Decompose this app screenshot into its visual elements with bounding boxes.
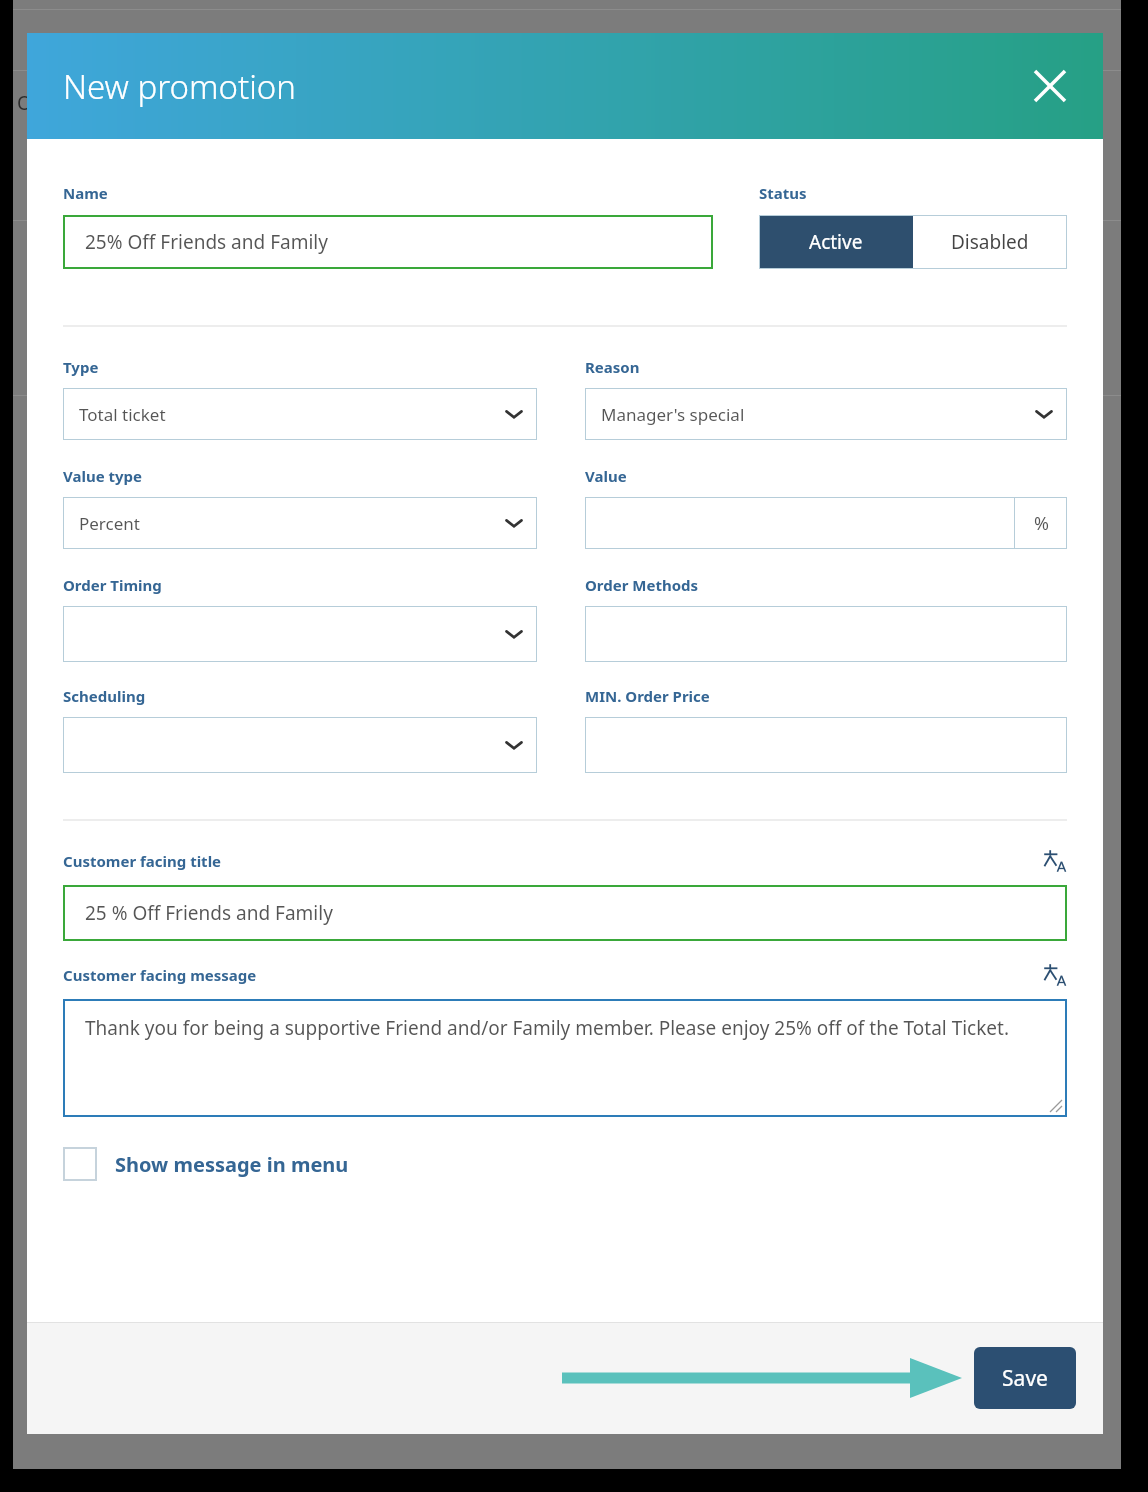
other: Translate: [1043, 849, 1067, 873]
staticText: Total ticket: [79, 403, 166, 426]
staticText: O: [17, 90, 32, 116]
button[interactable]: Active: [759, 215, 913, 269]
staticText: Disabled: [951, 229, 1029, 255]
staticText: Value type: [63, 466, 143, 486]
staticText: Status: [759, 183, 807, 203]
other: Translate: [1043, 963, 1067, 987]
button[interactable]: Save: [974, 1347, 1076, 1409]
button[interactable]: 25 % Off Friends and Family: [63, 885, 1067, 941]
staticText: Thank you for being a supportive Friend …: [85, 1015, 1010, 1041]
button[interactable]: [585, 497, 1014, 549]
button[interactable]: [63, 717, 537, 773]
button[interactable]: Percent: [63, 497, 537, 549]
staticText: Save: [1002, 1364, 1048, 1393]
staticText: Reason: [585, 357, 640, 377]
staticText: Order Methods: [585, 575, 699, 595]
button[interactable]: Disabled: [913, 215, 1067, 269]
staticText: 25% Off Friends and Family: [85, 229, 328, 255]
button[interactable]: Manager's special: [585, 388, 1067, 440]
button[interactable]: Show message in menu: [63, 1147, 349, 1181]
button[interactable]: [585, 606, 1067, 662]
button[interactable]: [63, 606, 537, 662]
staticText: %: [1034, 511, 1049, 536]
staticText: Scheduling: [63, 686, 146, 706]
staticText: Active: [809, 229, 863, 255]
staticText: Percent: [79, 512, 140, 535]
staticText: Customer facing title: [63, 851, 1043, 871]
staticText: 25 % Off Friends and Family: [85, 900, 333, 926]
staticText: Value: [585, 466, 627, 486]
staticText: Order Timing: [63, 575, 162, 595]
staticText: Show message in menu: [115, 1151, 349, 1178]
staticText: MIN. Order Price: [585, 686, 710, 706]
button[interactable]: Total ticket: [63, 388, 537, 440]
button[interactable]: 25% Off Friends and Family: [63, 215, 713, 269]
staticText: Name: [63, 183, 108, 203]
staticText: Manager's special: [601, 403, 745, 426]
staticText: Customer facing message: [63, 965, 1043, 985]
button[interactable]: Thank you for being a supportive Friend …: [63, 999, 1067, 1117]
staticText: New promotion: [63, 64, 296, 109]
staticText: Type: [63, 357, 99, 377]
button[interactable]: Close: [1027, 63, 1073, 109]
button[interactable]: [585, 717, 1067, 773]
